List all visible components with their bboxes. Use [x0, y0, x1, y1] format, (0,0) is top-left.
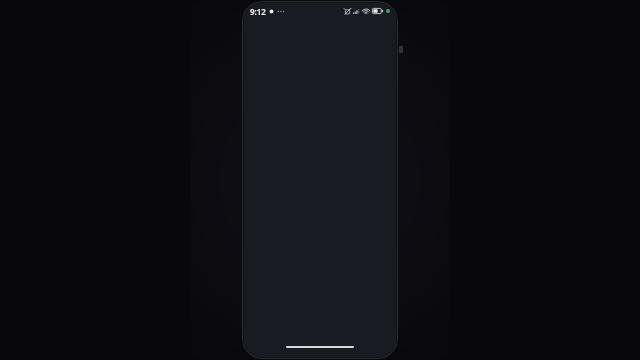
staticText: 9:12 — [250, 6, 266, 17]
button[interactable]: Home — [286, 346, 354, 348]
other: Power button — [399, 46, 403, 53]
